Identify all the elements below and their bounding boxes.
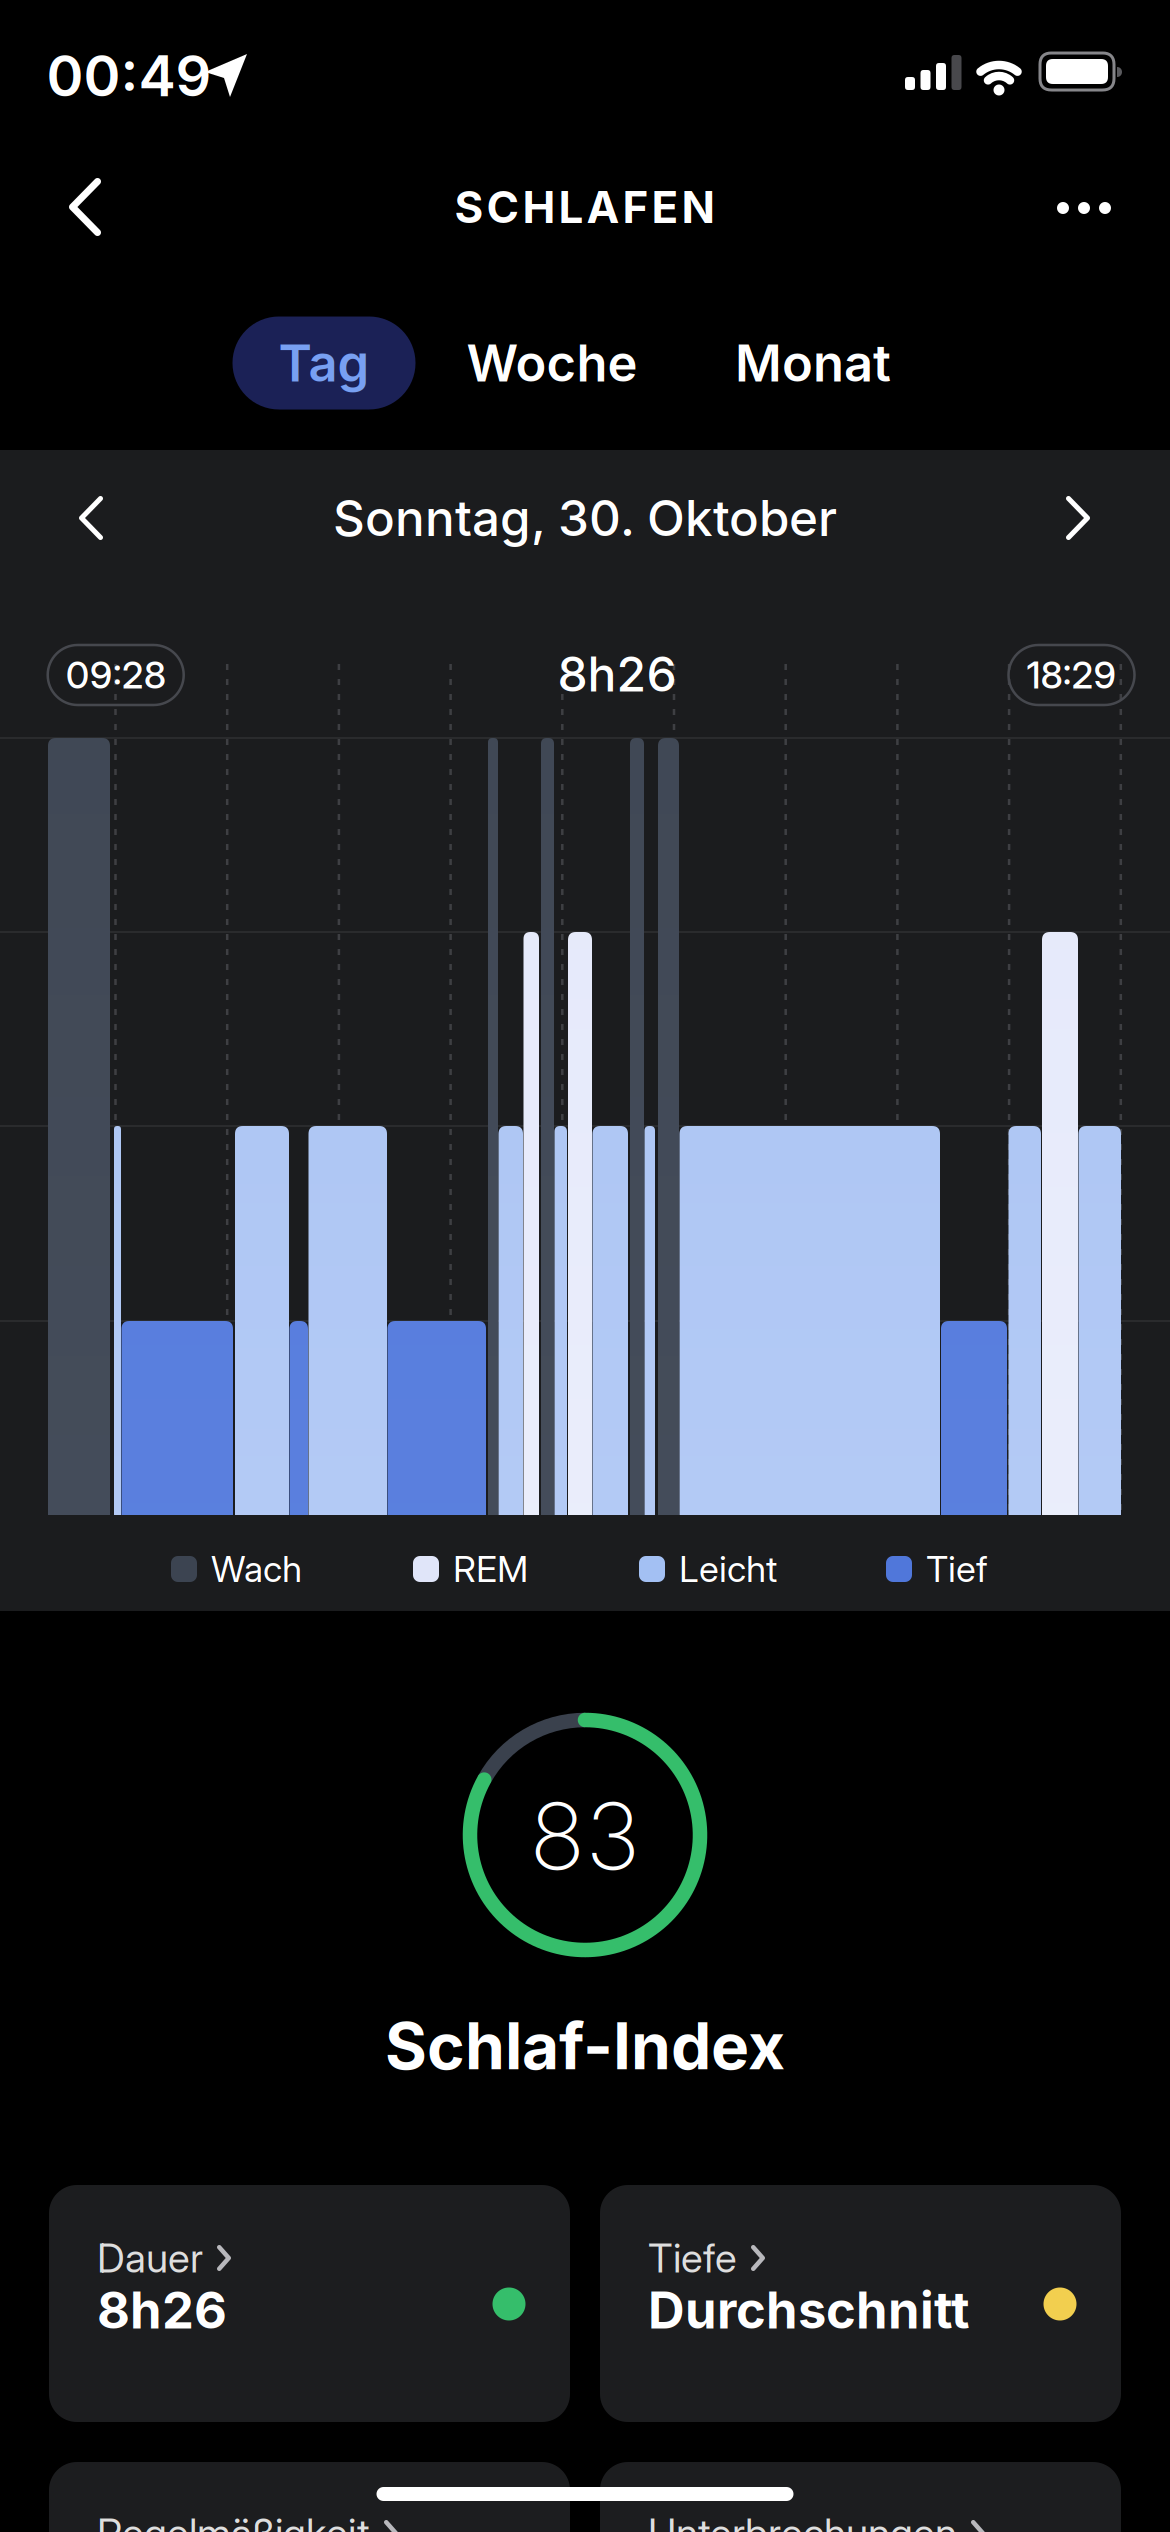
button[interactable]: Dauer: [49, 2185, 570, 2422]
button[interactable]: Zurück: [49, 158, 121, 256]
button[interactable]: Monat: [725, 323, 901, 403]
staticText: Schlaf-Index: [385, 2008, 785, 2084]
staticText: SCHLAFEN: [454, 181, 715, 233]
button[interactable]: Tag: [232, 316, 415, 409]
staticText: Monat: [735, 333, 891, 393]
staticText: Tag: [278, 333, 369, 393]
button[interactable]: Mehr: [1041, 185, 1129, 231]
button[interactable]: Vorheriger Tag: [61, 478, 121, 558]
staticText: Wach: [211, 1548, 302, 1590]
staticText: Unterbrechungen: [648, 2509, 957, 2532]
staticText: Leicht: [679, 1548, 777, 1590]
staticText: Regelmäßigkeit: [97, 2509, 370, 2532]
staticText: 8h26: [97, 2280, 227, 2340]
staticText: Durchschnitt: [648, 2280, 970, 2340]
staticText: 83: [529, 1782, 640, 1890]
staticText: Woche: [466, 333, 637, 393]
staticText: Dauer: [97, 2234, 203, 2282]
button[interactable]: Tiefe: [600, 2185, 1121, 2422]
staticText: 18:29: [1026, 653, 1116, 697]
button[interactable]: Woche: [456, 323, 647, 403]
staticText: Tief: [926, 1548, 988, 1590]
button[interactable]: Unterbrechungen: [600, 2462, 1121, 2532]
staticText: Tiefe: [648, 2234, 737, 2282]
staticText: Sonntag, 30. Oktober: [333, 489, 837, 547]
staticText: REM: [453, 1548, 528, 1590]
button[interactable]: Regelmäßigkeit: [49, 2462, 570, 2532]
staticText: 00:49: [46, 43, 211, 109]
staticText: 09:28: [66, 653, 166, 697]
button[interactable]: Nächster Tag: [1048, 478, 1108, 558]
staticText: 8h26: [557, 646, 676, 702]
